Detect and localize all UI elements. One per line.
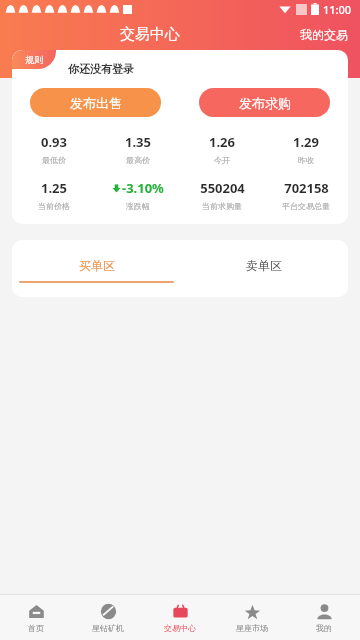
staticText: 平台交易总量: [282, 201, 330, 211]
staticText: 首页: [28, 623, 44, 633]
staticText: 当前求购量: [202, 201, 242, 211]
button[interactable]: 买单区: [12, 240, 180, 297]
staticText: 1.26: [209, 133, 235, 151]
button[interactable]: 卖单区: [180, 240, 348, 297]
staticText: -3.10%: [122, 179, 164, 197]
staticText: 昨收: [298, 155, 314, 165]
staticText: 你还没有登录: [68, 62, 134, 76]
staticText: 涨跌幅: [126, 201, 150, 211]
staticText: 规则: [25, 54, 43, 65]
staticText: 发布出售: [70, 95, 122, 111]
staticText: 我的交易: [300, 27, 348, 42]
button[interactable]: 规则: [12, 50, 56, 69]
button[interactable]: 我的交易: [300, 27, 360, 42]
staticText: 我的: [316, 623, 332, 633]
staticText: 发布求购: [239, 95, 291, 111]
staticText: 最低价: [42, 155, 66, 165]
staticText: 1.35: [125, 133, 151, 151]
staticText: 11:00: [323, 2, 352, 17]
staticText: 1.29: [293, 133, 319, 151]
staticText: 当前价格: [38, 201, 70, 211]
staticText: 今开: [214, 155, 230, 165]
staticText: 1.25: [41, 179, 67, 197]
button[interactable]: 星钻矿机: [72, 595, 144, 640]
staticText: 702158: [284, 179, 329, 197]
staticText: 交易中心: [120, 25, 180, 44]
staticText: 星钻矿机: [92, 623, 124, 633]
button[interactable]: 交易中心: [144, 595, 216, 640]
staticText: 星座市场: [236, 623, 268, 633]
button[interactable]: 发布求购: [199, 88, 330, 117]
button[interactable]: 发布出售: [30, 88, 161, 117]
button[interactable]: 我的: [288, 595, 360, 640]
staticText: 卖单区: [246, 258, 282, 273]
staticText: 550204: [200, 179, 245, 197]
staticText: 交易中心: [164, 623, 196, 633]
staticText: 0.93: [41, 133, 67, 151]
button[interactable]: 星座市场: [216, 595, 288, 640]
staticText: 最高价: [126, 155, 150, 165]
staticText: 买单区: [79, 258, 115, 273]
button[interactable]: 首页: [0, 595, 72, 640]
